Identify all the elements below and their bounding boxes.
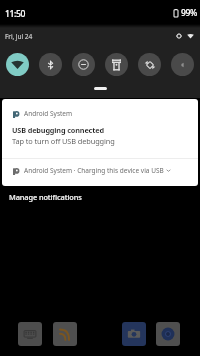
staticText: Android System · Charging this device vi…	[24, 166, 164, 175]
button[interactable]: Android System	[2, 99, 198, 186]
button[interactable]: Wi-Fi status	[187, 33, 194, 39]
staticText: Tap to turn off USB debugging	[12, 136, 115, 146]
button[interactable]: Feed reader	[53, 322, 77, 346]
button[interactable]: Camera	[122, 322, 146, 346]
button[interactable]: Do Not Disturb	[72, 53, 95, 76]
button[interactable]: Bluetooth	[39, 53, 62, 76]
button[interactable]: Chrome	[156, 322, 180, 346]
button[interactable]: Expand quick settings	[94, 87, 107, 90]
button[interactable]: Sound	[171, 53, 194, 76]
button[interactable]: Wi-Fi	[6, 53, 29, 76]
staticText: Android System	[24, 109, 73, 118]
staticText: 11:50	[5, 8, 26, 20]
button[interactable]: Calculator	[18, 322, 42, 346]
staticText: Manage notifications	[9, 192, 82, 202]
button[interactable]: Manage notifications	[0, 189, 200, 205]
button[interactable]: Privacy indicator	[176, 33, 182, 39]
button[interactable]: Auto-rotate	[138, 53, 161, 76]
staticText: Fri, Jul 24	[5, 32, 33, 41]
staticText: 99%	[181, 7, 197, 19]
staticText: USB debugging connected	[12, 125, 104, 135]
button[interactable]: Flashlight	[105, 53, 128, 76]
